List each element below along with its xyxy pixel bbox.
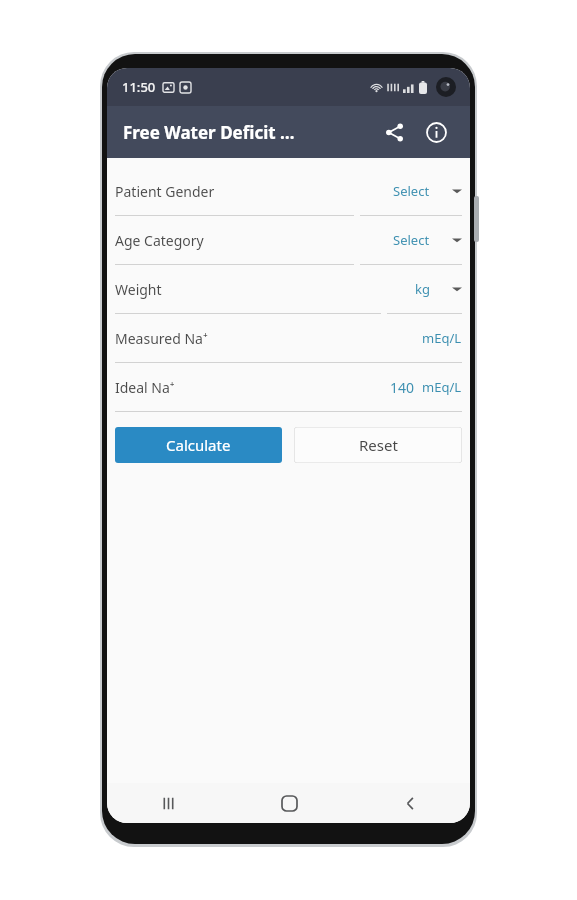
staticText: Select bbox=[393, 182, 430, 200]
button[interactable]: Age Category bbox=[107, 216, 470, 265]
staticText: mEq/L bbox=[422, 378, 462, 396]
button[interactable]: Home bbox=[267, 783, 311, 823]
button[interactable]: Calculate bbox=[115, 427, 282, 463]
button[interactable]: Patient Gender bbox=[107, 167, 470, 216]
button[interactable]: Recent apps bbox=[146, 783, 190, 823]
staticText: Calculate bbox=[166, 435, 231, 455]
staticText: Age Category bbox=[115, 231, 393, 250]
staticText: Free Water Deficit … bbox=[123, 121, 295, 144]
button[interactable]: Share bbox=[374, 112, 414, 152]
staticText: Patient Gender bbox=[115, 182, 393, 201]
button[interactable]: Ideal Na⁺ bbox=[107, 363, 470, 412]
staticText: Reset bbox=[359, 435, 398, 455]
staticText: Select bbox=[393, 231, 430, 249]
staticText: Weight bbox=[115, 280, 415, 299]
button[interactable]: Info bbox=[416, 112, 456, 152]
staticText: 140 bbox=[390, 378, 415, 397]
staticText: mEq/L bbox=[422, 329, 462, 347]
staticText: Ideal Na⁺ bbox=[115, 378, 390, 397]
staticText: 11:50 bbox=[122, 78, 156, 96]
button[interactable]: Reset bbox=[294, 427, 462, 463]
button[interactable]: Back bbox=[388, 783, 432, 823]
staticText: Measured Na⁺ bbox=[115, 329, 422, 348]
staticText: kg bbox=[415, 280, 430, 298]
button[interactable]: Measured Na⁺ bbox=[107, 314, 470, 363]
button[interactable]: Weight bbox=[107, 265, 470, 314]
